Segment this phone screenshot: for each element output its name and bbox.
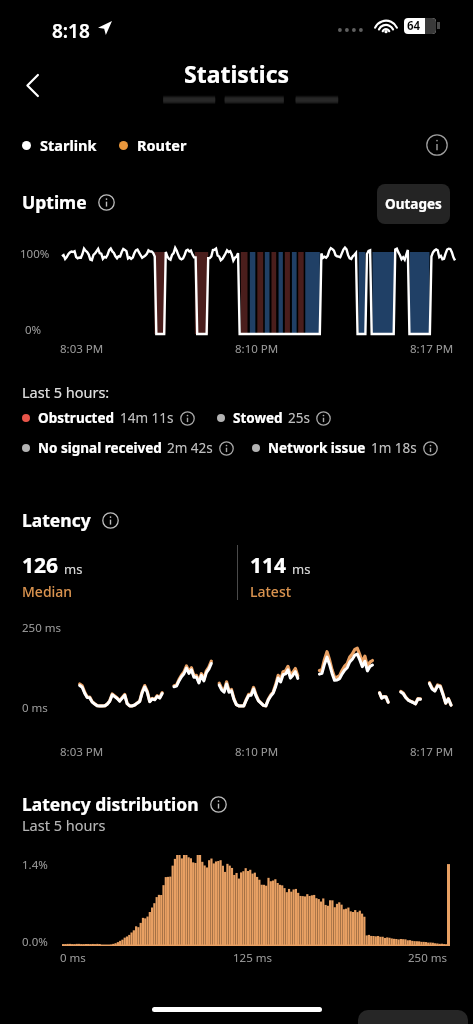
staticText: 125 ms xyxy=(233,950,272,966)
staticText: Uptime xyxy=(22,190,87,214)
staticText: Latency distribution xyxy=(22,792,199,816)
staticText: Latency xyxy=(22,508,91,532)
staticText: Outages xyxy=(385,195,442,213)
staticText: 8:18 xyxy=(52,18,90,44)
staticText: Median xyxy=(22,582,73,601)
staticText: 100% xyxy=(20,246,50,262)
staticText: 126 xyxy=(22,551,59,580)
button[interactable]: Obstructed xyxy=(22,409,195,427)
staticText: 8:03 PM xyxy=(60,341,104,357)
staticText: 0 ms xyxy=(22,700,48,716)
staticText: Network issue xyxy=(268,439,366,457)
staticText: 8:17 PM xyxy=(410,744,454,760)
staticText: 0% xyxy=(25,322,42,338)
button[interactable]: Latency info xyxy=(100,510,120,530)
staticText: ms xyxy=(64,560,83,578)
staticText: 25s xyxy=(288,409,310,427)
staticText: 1.4% xyxy=(22,857,48,873)
staticText: 250 ms xyxy=(408,950,447,966)
staticText: 8:10 PM xyxy=(235,744,279,760)
button[interactable]: Router xyxy=(119,135,187,155)
staticText: Obstructed xyxy=(38,409,115,427)
button[interactable]: Outages xyxy=(377,184,450,224)
button[interactable]: No signal received xyxy=(22,439,234,457)
button[interactable]: Info xyxy=(424,132,450,158)
staticText: No signal received xyxy=(38,439,162,457)
staticText: Last 5 hours xyxy=(22,815,106,835)
staticText: 114 xyxy=(250,551,287,580)
staticText: 0 ms xyxy=(60,950,86,966)
staticText: 64 xyxy=(407,18,421,34)
button[interactable]: Uptime info xyxy=(96,192,116,212)
button[interactable]: Starlink xyxy=(22,135,97,155)
button[interactable]: 126 xyxy=(22,551,83,601)
button[interactable]: Stowed xyxy=(217,409,331,427)
staticText: 1m 18s xyxy=(371,439,417,457)
staticText: 250 ms xyxy=(22,620,61,636)
staticText: Starlink xyxy=(40,135,97,155)
staticText: Router xyxy=(137,135,187,155)
staticText: Last 5 hours: xyxy=(22,382,110,402)
staticText: Statistics xyxy=(184,58,290,89)
staticText: 8:03 PM xyxy=(60,744,104,760)
button[interactable]: Network issue xyxy=(252,439,438,457)
staticText: 8:10 PM xyxy=(235,341,279,357)
staticText: Latest xyxy=(250,582,292,601)
button[interactable]: Latency distribution info xyxy=(208,794,228,814)
staticText: ms xyxy=(292,560,311,578)
button[interactable]: 114 xyxy=(250,551,311,601)
staticText: 0.0% xyxy=(22,934,48,950)
staticText: Stowed xyxy=(233,409,283,427)
staticText: 14m 11s xyxy=(120,409,174,427)
button[interactable]: Back xyxy=(12,62,58,108)
staticText: 8:17 PM xyxy=(410,341,454,357)
staticText: 2m 42s xyxy=(167,439,213,457)
